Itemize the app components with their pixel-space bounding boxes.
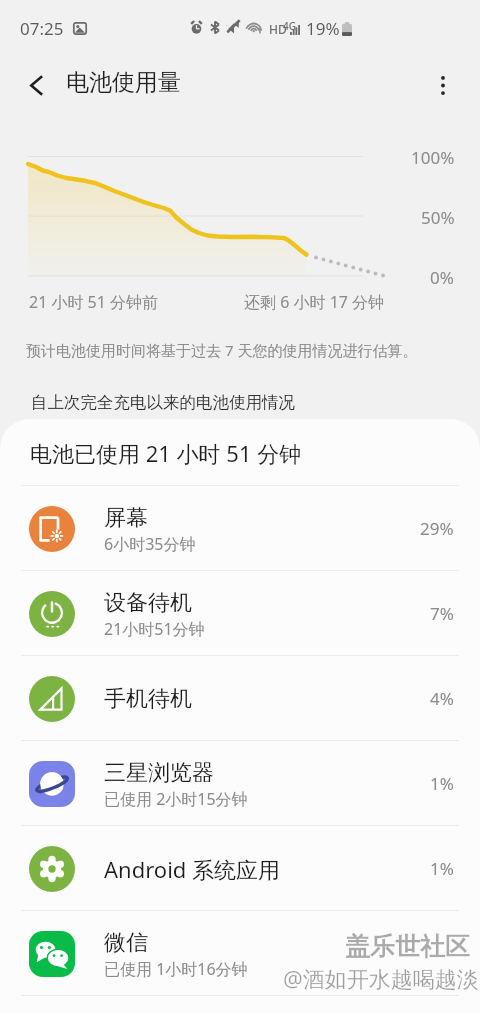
staticText: 已使用 2小时15分钟 bbox=[104, 788, 248, 810]
staticText: 已使用 1小时16分钟 bbox=[104, 958, 248, 980]
staticText: 盖乐世社区 bbox=[345, 931, 470, 962]
staticText: 19% bbox=[306, 17, 340, 40]
staticText: 7% bbox=[430, 602, 454, 625]
staticText: 0% bbox=[430, 266, 454, 289]
staticText: 100% bbox=[411, 146, 455, 169]
staticText: @酒如开水越喝越淡 bbox=[283, 963, 479, 993]
staticText: 1% bbox=[430, 857, 454, 880]
staticText: 21小时51分钟 bbox=[104, 618, 205, 640]
staticText: 微信 bbox=[104, 929, 148, 957]
button[interactable]: 屏幕 bbox=[0, 486, 480, 571]
staticText: 电池使用量 bbox=[66, 68, 181, 97]
staticText: HD bbox=[269, 21, 287, 37]
staticText: 预计电池使用时间将基于过去 7 天您的使用情况进行估算。 bbox=[26, 340, 418, 360]
staticText: 三星浏览器 bbox=[104, 759, 214, 787]
button[interactable]: 设备待机 bbox=[0, 571, 480, 656]
button[interactable]: 三星浏览器 bbox=[0, 741, 480, 826]
staticText: 07:25 bbox=[20, 17, 64, 40]
staticText: 还剩 6 小时 17 分钟 bbox=[244, 291, 385, 313]
staticText: 设备待机 bbox=[104, 589, 192, 617]
staticText: 手机待机 bbox=[104, 685, 192, 713]
button[interactable]: 手机待机 bbox=[0, 656, 480, 741]
staticText: Android 系统应用 bbox=[104, 854, 281, 884]
staticText: 自上次完全充电以来的电池使用情况 bbox=[31, 392, 295, 413]
staticText: 29% bbox=[420, 517, 454, 540]
button[interactable]: 微信 bbox=[0, 911, 480, 996]
staticText: 6小时35分钟 bbox=[104, 533, 196, 555]
staticText: 50% bbox=[421, 206, 455, 229]
staticText: 电池已使用 21 小时 51 分钟 bbox=[30, 438, 302, 468]
staticText: 4G bbox=[283, 19, 296, 33]
staticText: 1% bbox=[430, 772, 454, 795]
staticText: 21 小时 51 分钟前 bbox=[29, 291, 159, 313]
button[interactable]: Back bbox=[12, 61, 60, 109]
button[interactable]: More options bbox=[419, 61, 467, 109]
staticText: 屏幕 bbox=[104, 504, 148, 532]
staticText: 4% bbox=[430, 687, 454, 710]
button[interactable]: Android 系统应用 bbox=[0, 826, 480, 911]
